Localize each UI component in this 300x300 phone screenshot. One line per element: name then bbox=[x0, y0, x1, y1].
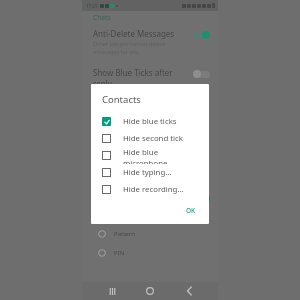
button[interactable]: Pattern bbox=[82, 229, 218, 239]
button[interactable]: PIN bbox=[82, 248, 218, 258]
staticText: Anti-Delete Messages bbox=[93, 28, 175, 39]
button[interactable]: Fingerprint bbox=[82, 210, 218, 220]
staticText: Pattern bbox=[114, 230, 135, 238]
button[interactable]: Back bbox=[180, 282, 198, 300]
button[interactable]: Hide recording... bbox=[91, 181, 209, 198]
staticText: Hide blue microphone bbox=[123, 147, 203, 164]
staticText: Hide typing... bbox=[123, 167, 172, 178]
staticText: Contacts bbox=[102, 93, 141, 106]
button[interactable]: Home bbox=[141, 282, 159, 300]
staticText: Chats bbox=[93, 13, 111, 22]
button[interactable]: WhatsApp Lock bbox=[82, 193, 218, 204]
staticText: Hide second tick bbox=[123, 133, 183, 144]
button[interactable]: Toggle off bbox=[193, 70, 210, 78]
staticText: Other people cannot delete messages for … bbox=[93, 40, 166, 55]
button[interactable]: Hide typing... bbox=[91, 164, 209, 181]
staticText: WhatsApp Lock bbox=[93, 193, 151, 204]
staticText: OK bbox=[186, 206, 196, 215]
button[interactable]: Hide blue ticks bbox=[91, 113, 209, 130]
staticText: PIN bbox=[114, 249, 125, 257]
button[interactable]: OK bbox=[183, 204, 199, 217]
staticText: Hide blue ticks bbox=[123, 116, 177, 127]
button[interactable]: Show Blue Ticks after reply bbox=[82, 65, 218, 107]
button[interactable]: Anti-Delete Messages bbox=[82, 26, 218, 57]
button[interactable]: Hide second tick bbox=[91, 130, 209, 147]
staticText: Show Blue Ticks after reply bbox=[93, 67, 189, 89]
staticText: 17:25 bbox=[86, 3, 98, 9]
button[interactable]: Hide blue microphone bbox=[91, 147, 209, 164]
staticText: Hide recording... bbox=[123, 184, 184, 195]
button[interactable]: Recent apps bbox=[103, 282, 121, 300]
staticText: Contact will only see blue ticks after y… bbox=[93, 90, 187, 105]
button[interactable]: Toggle on bbox=[193, 31, 210, 39]
